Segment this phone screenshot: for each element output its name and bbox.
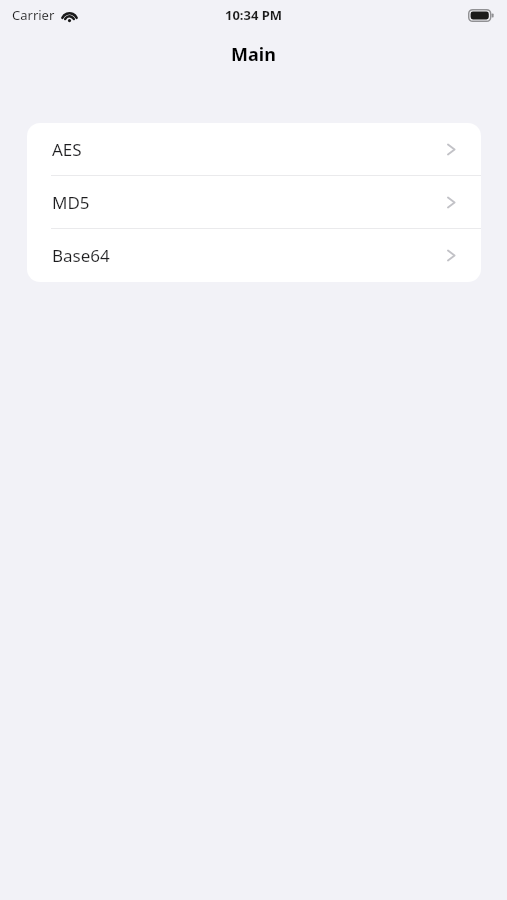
staticText: MD5: [52, 191, 90, 214]
staticText: Main: [231, 42, 276, 67]
staticText: AES: [52, 138, 82, 161]
staticText: 10:34 PM: [225, 6, 283, 24]
button[interactable]: MD5: [27, 176, 481, 229]
button[interactable]: AES: [27, 123, 481, 176]
staticText: Base64: [52, 244, 110, 267]
button[interactable]: Base64: [27, 229, 481, 282]
staticText: Carrier: [12, 6, 55, 24]
